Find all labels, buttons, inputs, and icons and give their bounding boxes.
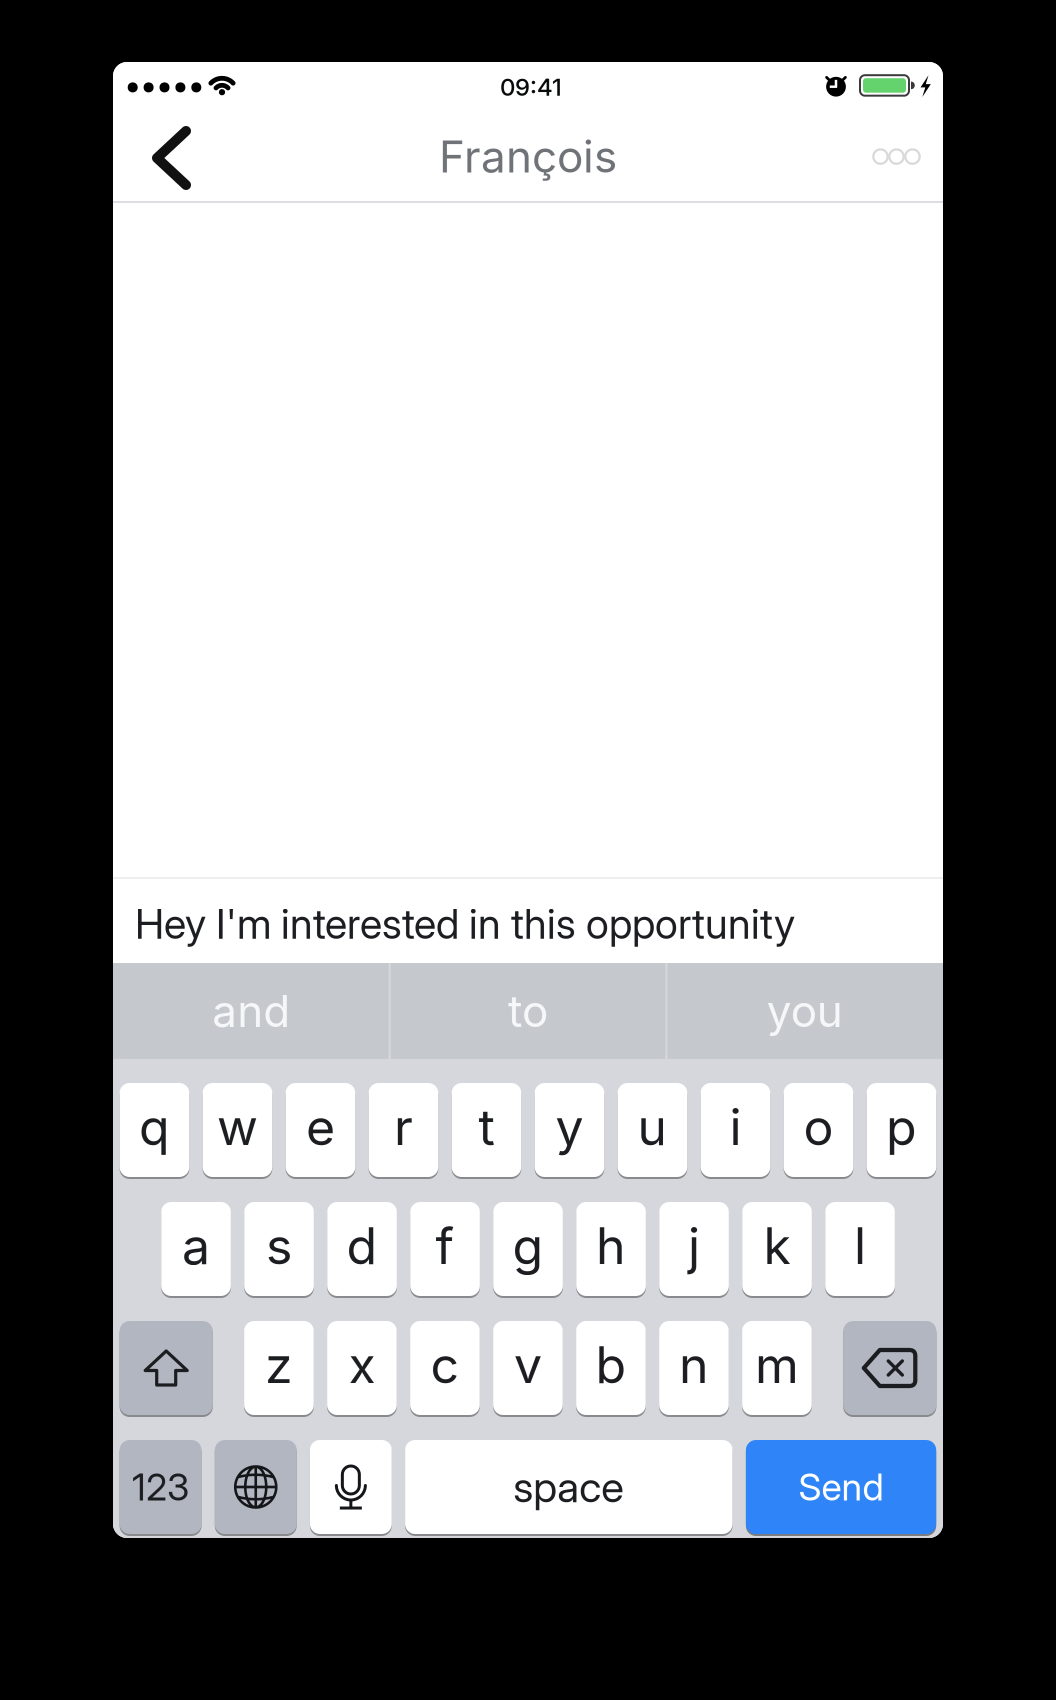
staticText: 123 — [132, 1465, 189, 1509]
staticText: s — [266, 1216, 292, 1276]
staticText: and — [212, 984, 290, 1038]
staticText: x — [348, 1335, 375, 1395]
staticText: 09:41 — [500, 72, 562, 101]
button[interactable]: Send — [746, 1440, 936, 1534]
button[interactable]: Shift — [120, 1321, 213, 1415]
staticText: o — [803, 1097, 833, 1157]
button[interactable]: n — [659, 1321, 729, 1415]
button[interactable]: z — [244, 1321, 314, 1415]
button[interactable]: v — [493, 1321, 563, 1415]
button[interactable]: Back — [142, 119, 202, 197]
button[interactable]: j — [659, 1202, 729, 1296]
staticText: c — [430, 1335, 459, 1395]
button[interactable]: f — [410, 1202, 480, 1296]
button[interactable]: k — [742, 1202, 812, 1296]
button[interactable]: m — [742, 1321, 812, 1415]
button[interactable]: u — [618, 1083, 687, 1177]
button[interactable]: c — [410, 1321, 480, 1415]
button[interactable]: i — [701, 1083, 770, 1177]
staticText: r — [394, 1097, 413, 1157]
button[interactable]: and — [113, 963, 390, 1059]
staticText: y — [555, 1097, 583, 1157]
button[interactable]: a — [161, 1202, 231, 1296]
button[interactable]: to — [390, 963, 666, 1059]
staticText: k — [764, 1216, 791, 1276]
staticText: you — [767, 984, 843, 1038]
staticText: l — [854, 1216, 866, 1276]
button[interactable]: q — [120, 1083, 189, 1177]
button[interactable]: g — [493, 1202, 563, 1296]
staticText: n — [679, 1335, 709, 1395]
button[interactable]: r — [369, 1083, 438, 1177]
button[interactable]: p — [867, 1083, 936, 1177]
button[interactable]: More — [870, 136, 934, 176]
staticText: b — [595, 1335, 626, 1395]
button[interactable]: t — [452, 1083, 521, 1177]
staticText: i — [729, 1097, 741, 1157]
staticText: to — [508, 984, 548, 1038]
staticText: v — [514, 1335, 542, 1395]
staticText: Send — [798, 1465, 883, 1509]
staticText: h — [596, 1216, 626, 1276]
button[interactable]: Delete — [843, 1321, 936, 1415]
button[interactable]: 123 — [120, 1440, 201, 1534]
button[interactable]: x — [327, 1321, 397, 1415]
staticText: g — [512, 1216, 543, 1276]
button[interactable]: y — [535, 1083, 604, 1177]
staticText: j — [688, 1216, 700, 1276]
button[interactable]: you — [666, 963, 943, 1059]
staticText: space — [513, 1462, 624, 1512]
button[interactable]: Next keyboard — [215, 1440, 297, 1534]
staticText: Hey I'm interested in this opportunity — [135, 899, 795, 949]
button[interactable]: b — [576, 1321, 646, 1415]
button[interactable]: l — [825, 1202, 895, 1296]
staticText: t — [478, 1097, 494, 1157]
staticText: a — [182, 1216, 210, 1276]
staticText: w — [217, 1097, 258, 1157]
staticText: p — [886, 1097, 917, 1157]
staticText: f — [436, 1216, 455, 1276]
button[interactable]: s — [244, 1202, 314, 1296]
staticText: u — [637, 1097, 667, 1157]
button[interactable]: o — [784, 1083, 853, 1177]
button[interactable]: Dictation — [310, 1440, 392, 1534]
staticText: d — [347, 1216, 378, 1276]
staticText: z — [265, 1335, 293, 1395]
button[interactable]: space — [405, 1440, 733, 1534]
button[interactable]: e — [286, 1083, 355, 1177]
button[interactable]: w — [203, 1083, 272, 1177]
staticText: e — [306, 1097, 335, 1157]
staticText: François — [439, 130, 617, 183]
staticText: m — [755, 1335, 799, 1395]
button[interactable]: h — [576, 1202, 646, 1296]
staticText: q — [139, 1097, 170, 1157]
button[interactable]: d — [327, 1202, 397, 1296]
